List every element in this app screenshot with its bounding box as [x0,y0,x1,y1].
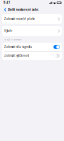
staticText: Další nastavení zobr. [8,8,39,11]
button[interactable]: Zobrazit vytíženost [2,51,62,60]
button[interactable]: Zobrazit na celé ploše [2,14,62,24]
staticText: Zobrazit sílu signálu [4,45,32,49]
button[interactable]: Back [4,7,6,13]
staticText: Zobrazit na celé ploše [4,17,35,21]
staticText: 9:41 [3,1,10,4]
button[interactable]: Výběr [2,26,62,36]
button[interactable]: Zobrazit sílu signálu [2,43,62,51]
staticText: Zobrazit vytíženost [4,54,29,57]
staticText: DALŠÍ NASTAVENÍ [4,38,22,41]
staticText: Výběr [4,29,12,33]
